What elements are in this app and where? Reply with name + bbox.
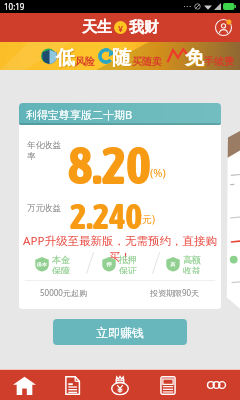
staticText: 利得宝尊享版二十期B: [26, 107, 133, 122]
staticText: ¥: [118, 22, 124, 34]
button[interactable]: 利得宝尊享版二十期B: [19, 103, 221, 125]
button[interactable]: Account: [214, 18, 233, 37]
staticText: 低: [57, 47, 76, 71]
staticText: 50000元起购: [40, 287, 87, 298]
staticText: 免: [185, 46, 204, 70]
button[interactable]: Wallet: [96, 370, 144, 400]
staticText: (%): [150, 165, 166, 180]
staticText: APP升级至最新版，无需预约，直接购买！: [19, 233, 221, 264]
staticText: 抵押: [119, 254, 137, 265]
staticText: 随: [112, 46, 131, 70]
staticText: 立即赚钱: [96, 325, 144, 340]
staticText: ⋯: [183, 2, 191, 11]
staticText: 收益: [183, 265, 201, 274]
staticText: 高: [166, 261, 180, 267]
button[interactable]: 年化收益率: [19, 125, 221, 309]
staticText: 投资期限90天: [150, 287, 200, 298]
staticText: 年化收益率: [27, 140, 63, 162]
staticText: 买随卖: [132, 55, 162, 68]
staticText: 风险: [75, 55, 95, 68]
button[interactable]: 低: [0, 42, 240, 70]
staticText: 随: [113, 47, 132, 71]
button[interactable]: 立即赚钱: [53, 319, 187, 345]
staticText: 天生: [82, 18, 112, 37]
staticText: (元): [139, 212, 155, 226]
staticText: 低: [56, 46, 75, 70]
staticText: 保证: [119, 265, 137, 274]
button[interactable]: News: [144, 370, 192, 400]
staticText: 万元收益: [27, 203, 61, 214]
staticText: 押: [102, 261, 116, 267]
button[interactable]: More: [192, 370, 240, 400]
staticText: 10:19: [4, 1, 25, 12]
staticText: 保障: [52, 265, 70, 274]
button[interactable]: Home: [0, 370, 48, 400]
staticText: 8.20: [68, 135, 151, 195]
staticText: 手续费: [204, 55, 234, 68]
staticText: 我财: [129, 18, 159, 37]
button[interactable]: Products: [48, 370, 96, 400]
staticText: 本金: [52, 254, 70, 265]
staticText: 高额: [183, 254, 201, 265]
staticText: 保本: [35, 261, 49, 267]
staticText: 免: [186, 47, 205, 71]
staticText: 2.240: [70, 196, 143, 236]
